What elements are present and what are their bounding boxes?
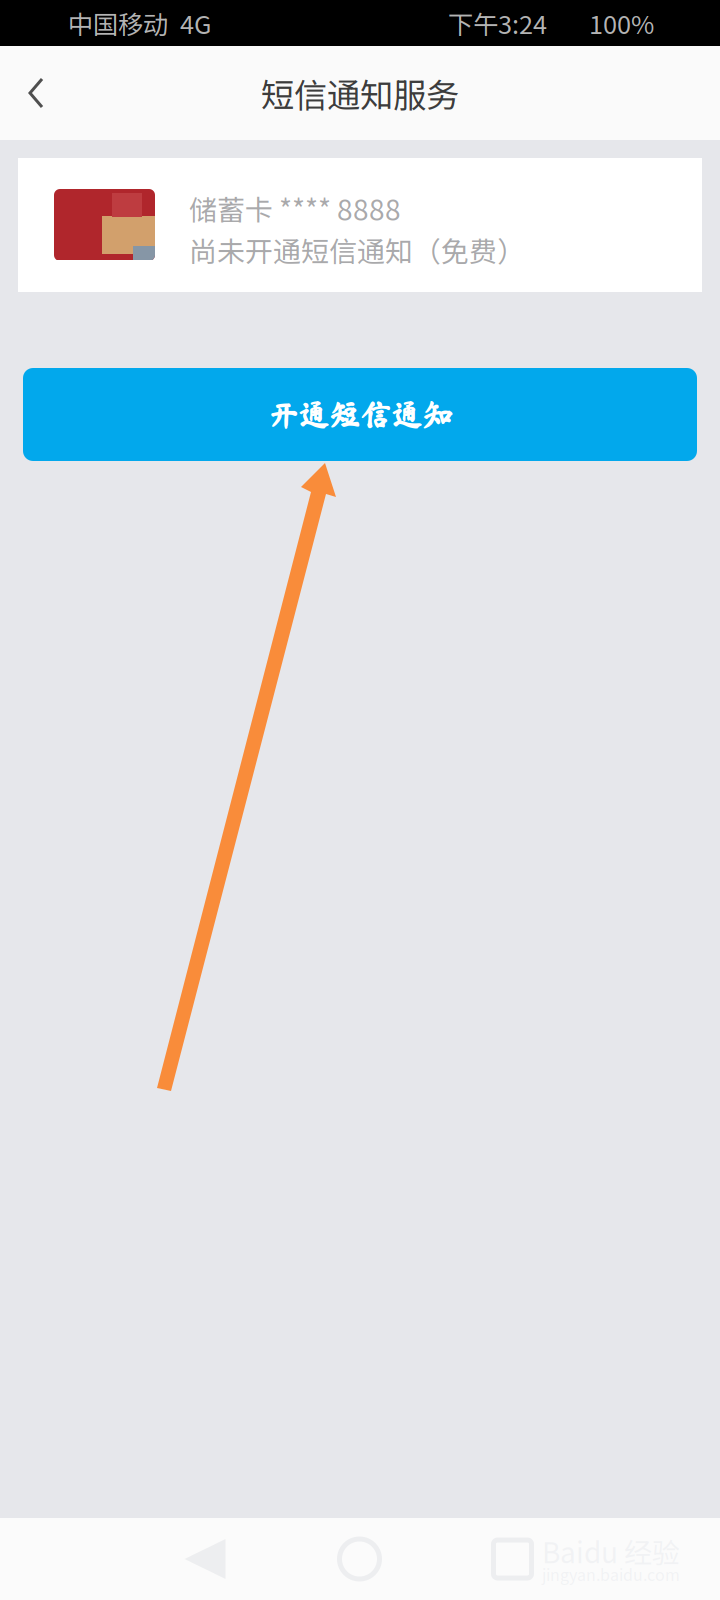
staticText: Baidu 经验 [542,1531,680,1571]
staticText: jingyan.baidu.com [542,1562,680,1586]
staticText: 开通短信通知 [267,399,453,430]
staticText: 下午3:24 [448,5,547,41]
button[interactable]: 返回 [127,1518,283,1600]
button[interactable]: 储蓄卡 **** 8888 [18,158,702,292]
staticText: 短信通知服务 [261,69,459,117]
staticText: 尚未开通短信通知（免费） [189,229,525,270]
button[interactable]: 最近任务 [436,1518,589,1600]
button[interactable]: 开通短信通知 [23,368,697,461]
staticText: 中国移动 4G [68,5,211,41]
staticText: 储蓄卡 **** 8888 [189,188,401,228]
staticText: 100% [589,5,654,41]
button[interactable]: 返回 [0,46,72,140]
